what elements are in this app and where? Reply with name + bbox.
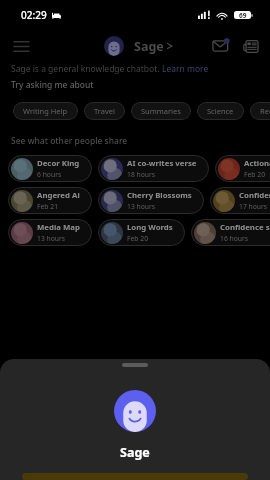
staticText: Learn more <box>162 63 209 75</box>
staticText: Angered Ai <box>37 190 80 201</box>
staticText: Writing Help <box>23 106 68 116</box>
button[interactable]: Confidence sc <box>194 219 270 246</box>
button[interactable]: Messages <box>208 33 234 59</box>
button[interactable]: Media Map <box>11 219 80 246</box>
staticText: 6 hours <box>37 170 62 179</box>
staticText: Feb 20 <box>244 170 266 179</box>
button[interactable]: Travel <box>94 102 115 120</box>
staticText: 16 hours <box>220 234 249 243</box>
button[interactable]: Summaries <box>141 102 181 120</box>
staticText: See what other people share <box>11 135 128 147</box>
button[interactable]: Recipes <box>260 102 270 120</box>
button[interactable]: Sage <box>104 36 174 56</box>
staticText: Sage <box>120 444 150 461</box>
button[interactable]: Menu <box>7 32 35 60</box>
staticText: 18 hours <box>127 170 156 179</box>
button[interactable]: Decor King <box>11 155 80 182</box>
staticText: Feb 20 <box>127 234 149 243</box>
staticText: Sage is a general knowledge chatbot. <box>11 63 162 75</box>
button[interactable]: Confiden <box>213 187 270 214</box>
staticText: 13 hours <box>37 234 66 243</box>
staticText: Feb 21 <box>37 202 59 211</box>
staticText: Media Map <box>37 222 80 233</box>
staticText: Summaries <box>141 106 181 116</box>
button[interactable]: Actiona <box>218 155 270 182</box>
staticText: Confidence sc <box>220 222 270 233</box>
staticText: 13 hours <box>127 202 156 211</box>
staticText: Actiona <box>244 158 270 169</box>
staticText: Cherry Blossoms <box>127 190 192 201</box>
button[interactable]: Science <box>207 102 234 120</box>
staticText: Sage <box>134 38 164 55</box>
button[interactable]: Cherry Blossoms <box>101 187 192 214</box>
staticText: Travel <box>94 106 115 116</box>
staticText: Decor King <box>37 158 80 169</box>
staticText: Long Words <box>127 222 173 233</box>
staticText: Try asking me about <box>11 79 94 91</box>
button[interactable]: Writing Help <box>23 102 68 120</box>
staticText: Recipes <box>260 106 270 116</box>
staticText: Science <box>207 106 234 116</box>
staticText: Confiden <box>239 190 270 201</box>
staticText: AI co-writes verse <box>127 158 197 169</box>
staticText: 17 hours <box>239 202 268 211</box>
button[interactable]: News <box>238 33 264 59</box>
button[interactable]: Angered Ai <box>11 187 80 214</box>
button[interactable]: AI co-writes verse <box>101 155 197 182</box>
button[interactable]: Long Words <box>101 219 173 246</box>
staticText: 02:29 <box>21 8 47 22</box>
staticText: 69 <box>239 11 247 19</box>
